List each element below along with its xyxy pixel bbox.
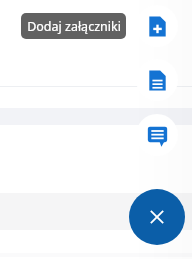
button[interactable]: Dodaj komentarz — [136, 114, 178, 156]
staticText: Dodaj załączniki — [27, 18, 121, 35]
button[interactable]: Dodaj załączniki — [21, 13, 126, 39]
button[interactable]: Zamknij — [129, 189, 185, 245]
button[interactable]: Dodaj dokument — [136, 59, 178, 101]
button[interactable]: Dodaj załączniki — [136, 5, 178, 47]
